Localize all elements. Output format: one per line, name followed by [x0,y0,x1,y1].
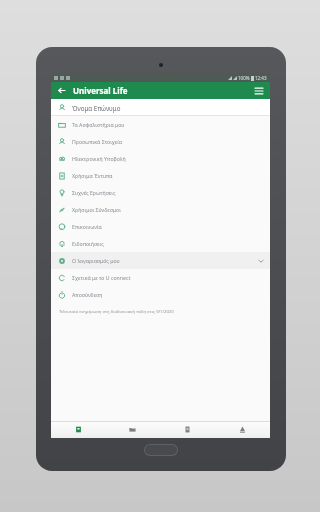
staticText: 12:43 [255,75,267,81]
button[interactable]: Σχετικά με το U connect [51,269,270,286]
button[interactable]: Ο λογαριασμός μου [51,252,270,269]
staticText: Τελευταία ενημέρωση στη διαδικτυακή πύλη… [59,309,174,315]
staticText: Αποσύνδεση [72,291,103,298]
staticText: Χρήσιμοι Σύνδεσμοι [72,206,121,213]
staticText: Επικοινωνία [72,223,102,230]
button[interactable]: Συχνές Ερωτήσεις [51,184,270,201]
button[interactable]: Επικοινωνία [51,218,270,235]
staticText: Όνομα Επώνυμο [72,104,121,112]
staticText: Ειδοποιήσεις [72,240,104,247]
button[interactable]: alert [215,421,270,438]
button[interactable]: Menu [251,83,267,99]
button[interactable]: Ειδοποιήσεις [51,235,270,252]
staticText: Προσωπικά Στοιχεία [72,138,123,145]
staticText: Universal Life [73,85,128,96]
button[interactable]: page [160,421,215,438]
staticText: Χρήσιμα Έντυπα [72,172,113,179]
staticText: Ο λογαριασμός μου [72,257,120,264]
button[interactable]: Back [54,83,69,98]
button[interactable]: Προσωπικά Στοιχεία [51,133,270,150]
staticText: Τα Ασφαλιστήρια μου [72,121,125,128]
button[interactable]: Χρήσιμοι Σύνδεσμοι [51,201,270,218]
button[interactable]: Όνομα Επώνυμο [51,99,270,116]
button[interactable]: home [51,421,105,438]
button[interactable]: Αποσύνδεση [51,286,270,303]
button[interactable]: Ηλεκτρονική Υποβολή [51,150,270,167]
staticText: Σχετικά με το U connect [72,274,131,281]
staticText: 100% [238,75,250,81]
button[interactable]: Τα Ασφαλιστήρια μου [51,116,270,133]
button[interactable]: Χρήσιμα Έντυπα [51,167,270,184]
staticText: Ηλεκτρονική Υποβολή [72,155,126,162]
button[interactable]: files [105,421,160,438]
staticText: Συχνές Ερωτήσεις [72,189,116,196]
